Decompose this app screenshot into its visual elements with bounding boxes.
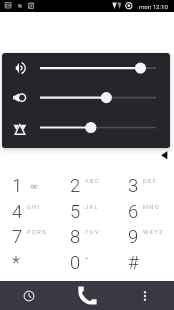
staticText: 7 [12, 226, 23, 248]
staticText: DEF [143, 178, 158, 185]
button[interactable]: 9 [116, 221, 174, 247]
button[interactable]: * [0, 247, 58, 273]
staticText: 4 [12, 201, 23, 223]
button[interactable]: 2 [58, 170, 116, 196]
staticText: mon 12:10 [139, 3, 168, 10]
button[interactable] [2, 53, 170, 148]
staticText: 2 [70, 175, 81, 197]
staticText: MNO [143, 204, 161, 211]
staticText: GHI [27, 204, 41, 211]
button[interactable]: 7 [0, 221, 58, 247]
button[interactable]: 8 [58, 221, 116, 247]
staticText: 1 [12, 175, 23, 197]
staticText: * [12, 252, 20, 274]
button[interactable]: Dialpad [58, 281, 116, 310]
button[interactable]: Recent calls [0, 281, 58, 310]
staticText: 8 [70, 226, 81, 248]
staticText: 9 [128, 226, 139, 248]
staticText: PQRS [27, 229, 48, 236]
staticText: WXYZ [143, 229, 165, 236]
staticText: 0 [70, 252, 81, 274]
staticText: ABC [85, 178, 101, 185]
button[interactable]: Expand volume controls [156, 148, 170, 162]
staticText: JKL [85, 204, 100, 211]
button[interactable]: 0 [58, 247, 116, 273]
button[interactable]: 3 [116, 170, 174, 196]
staticText: TUV [85, 229, 100, 236]
button[interactable]: 5 [58, 196, 116, 222]
button[interactable]: More options [116, 281, 174, 310]
button[interactable]: 6 [116, 196, 174, 222]
staticText: # [128, 252, 139, 274]
staticText: 3 [128, 175, 139, 197]
button[interactable] [2, 53, 170, 148]
staticText: 5 [70, 201, 81, 223]
button[interactable] [2, 53, 170, 148]
staticText: + [85, 255, 90, 262]
button[interactable]: 1 [0, 170, 58, 196]
staticText: 6 [128, 201, 139, 223]
button[interactable]: 4 [0, 196, 58, 222]
button[interactable]: # [116, 247, 174, 273]
